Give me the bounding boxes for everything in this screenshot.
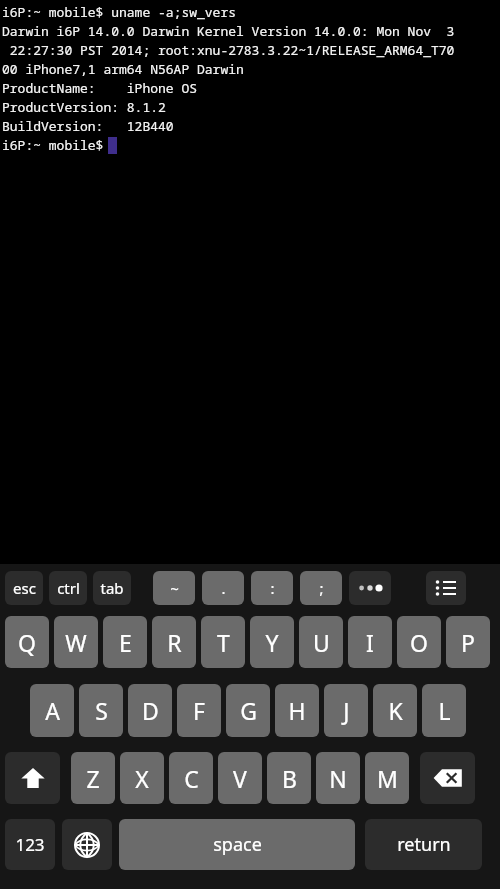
button[interactable]: V: [218, 752, 262, 804]
staticText: 00 iPhone7,1 arm64 N56AP Darwin: [2, 60, 244, 78]
button[interactable]: Y: [250, 616, 294, 668]
button[interactable]: B: [267, 752, 311, 804]
staticText: i6P:~ mobile$ uname -a;sw_vers: [2, 3, 237, 21]
staticText: 123: [15, 833, 45, 856]
button[interactable]: space: [119, 819, 355, 870]
button[interactable]: Command list: [426, 571, 466, 605]
staticText: C: [184, 763, 199, 794]
button[interactable]: return: [365, 819, 482, 870]
button[interactable]: More keys: [349, 571, 391, 605]
button[interactable]: ~: [153, 571, 195, 605]
button[interactable]: U: [299, 616, 343, 668]
staticText: J: [343, 695, 350, 726]
button[interactable]: Q: [5, 616, 49, 668]
staticText: ~: [170, 578, 179, 598]
button[interactable]: Z: [71, 752, 115, 804]
staticText: M: [377, 763, 398, 794]
staticText: Y: [265, 627, 279, 658]
button[interactable]: G: [226, 684, 270, 737]
staticText: i6P:~ mobile$: [2, 136, 112, 154]
staticText: D: [142, 695, 159, 726]
button[interactable]: H: [275, 684, 319, 737]
staticText: :: [270, 578, 275, 598]
staticText: I: [366, 627, 374, 658]
staticText: O: [410, 627, 428, 658]
staticText: tab: [100, 578, 124, 598]
staticText: G: [240, 695, 257, 726]
button[interactable]: I: [348, 616, 392, 668]
button[interactable]: Shift: [5, 752, 60, 804]
staticText: ProductName: iPhone OS: [2, 79, 198, 97]
button[interactable]: Change keyboard: [62, 819, 112, 870]
button[interactable]: tab: [93, 571, 131, 605]
button[interactable]: L: [422, 684, 466, 737]
button[interactable]: S: [79, 684, 123, 737]
staticText: R: [167, 627, 182, 658]
button[interactable]: 123: [5, 819, 55, 870]
staticText: L: [438, 695, 451, 726]
button[interactable]: X: [120, 752, 164, 804]
button[interactable]: .: [202, 571, 244, 605]
staticText: ctrl: [57, 578, 80, 598]
staticText: T: [217, 627, 230, 658]
button[interactable]: ctrl: [49, 571, 87, 605]
button[interactable]: A: [30, 684, 74, 737]
staticText: W: [65, 627, 87, 658]
staticText: K: [388, 695, 403, 726]
button[interactable]: O: [397, 616, 441, 668]
button[interactable]: N: [316, 752, 360, 804]
button[interactable]: esc: [5, 571, 43, 605]
staticText: BuildVersion: 12B440: [2, 117, 174, 135]
staticText: space: [213, 832, 262, 857]
staticText: V: [233, 763, 247, 794]
staticText: N: [329, 763, 347, 794]
staticText: 22:27:30 PST 2014; root:xnu-2783.3.22~1/…: [2, 41, 455, 59]
button[interactable]: ;: [300, 571, 342, 605]
staticText: P: [461, 627, 475, 658]
staticText: S: [95, 695, 108, 726]
staticText: esc: [13, 578, 36, 598]
staticText: U: [313, 627, 330, 658]
button[interactable]: P: [446, 616, 490, 668]
button[interactable]: F: [177, 684, 221, 737]
button[interactable]: D: [128, 684, 172, 737]
staticText: Q: [18, 627, 36, 658]
button[interactable]: Backspace: [420, 752, 475, 804]
button[interactable]: :: [251, 571, 293, 605]
staticText: F: [193, 695, 205, 726]
button[interactable]: W: [54, 616, 98, 668]
staticText: B: [282, 763, 297, 794]
button[interactable]: R: [152, 616, 196, 668]
button[interactable]: E: [103, 616, 147, 668]
staticText: X: [135, 763, 149, 794]
button[interactable]: T: [201, 616, 245, 668]
button[interactable]: C: [169, 752, 213, 804]
button[interactable]: J: [324, 684, 368, 737]
staticText: H: [288, 695, 306, 726]
staticText: Darwin i6P 14.0.0 Darwin Kernel Version …: [2, 22, 455, 40]
staticText: ProductVersion: 8.1.2: [2, 98, 166, 116]
staticText: A: [45, 695, 60, 726]
staticText: .: [221, 578, 226, 598]
button[interactable]: K: [373, 684, 417, 737]
staticText: E: [119, 627, 132, 658]
staticText: return: [397, 832, 451, 857]
staticText: Z: [86, 763, 100, 794]
staticText: ;: [319, 578, 324, 598]
button[interactable]: M: [365, 752, 409, 804]
